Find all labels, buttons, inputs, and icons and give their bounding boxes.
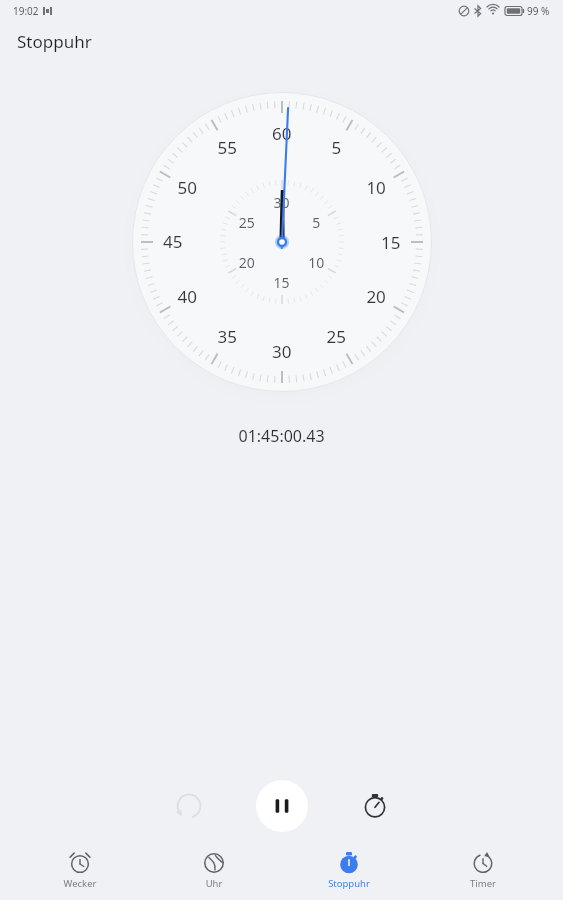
button[interactable]: Zurücksetzen: [162, 779, 216, 833]
button[interactable]: Pause: [256, 780, 308, 832]
button[interactable]: [159, 848, 269, 894]
button[interactable]: Runde: [348, 779, 402, 833]
button[interactable]: [294, 848, 404, 894]
button[interactable]: [25, 848, 135, 894]
button[interactable]: [428, 848, 538, 894]
